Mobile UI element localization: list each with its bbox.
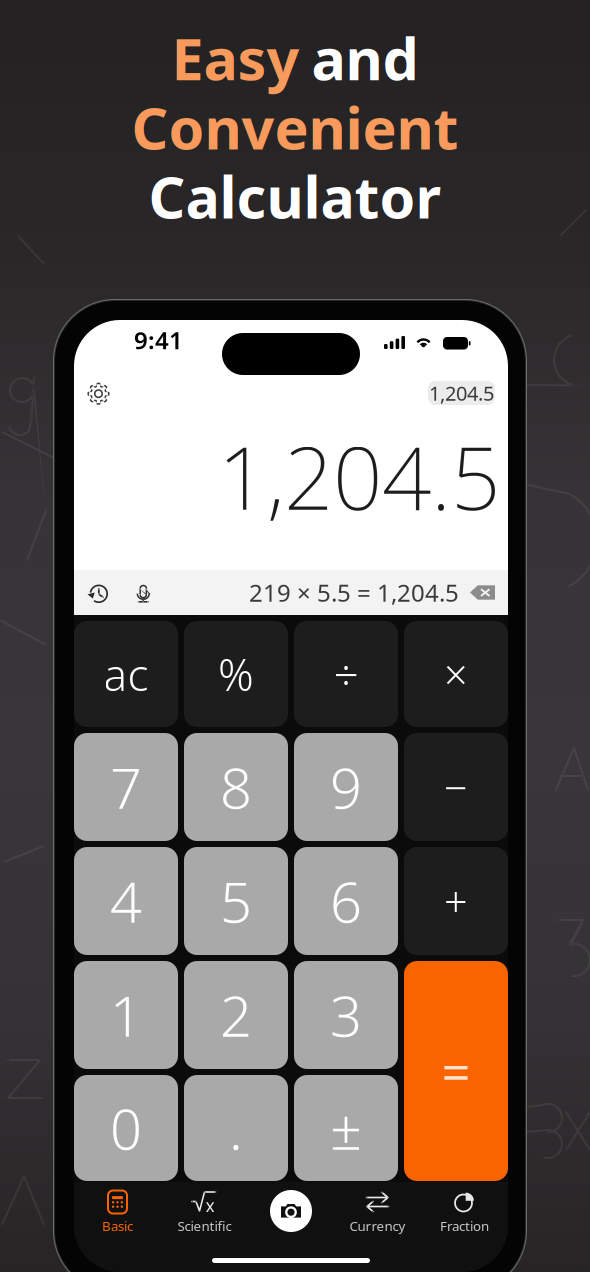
button[interactable]: ± — [294, 1075, 398, 1181]
button[interactable]: History — [80, 570, 114, 615]
staticText: 0 — [110, 1091, 142, 1165]
staticText: 1,204.5 — [429, 380, 494, 406]
button[interactable]: 2 — [184, 961, 288, 1069]
button[interactable]: x — [161, 1189, 248, 1239]
button[interactable]: Fraction — [421, 1189, 508, 1239]
button[interactable]: Currency — [334, 1189, 421, 1239]
staticText: 7 — [110, 750, 142, 824]
button[interactable]: = — [404, 961, 508, 1181]
staticText: 9 — [330, 750, 362, 824]
staticText: Scientific — [177, 1217, 231, 1235]
button[interactable]: Voice input — [128, 570, 158, 615]
button[interactable]: 4 — [74, 847, 178, 955]
button[interactable]: 6 — [294, 847, 398, 955]
staticText: x — [205, 1194, 214, 1217]
button[interactable]: Camera — [262, 1182, 320, 1240]
staticText: 3 — [330, 978, 362, 1052]
staticText: ac — [103, 645, 148, 703]
staticText: 2 — [220, 978, 252, 1052]
staticText: × — [444, 647, 468, 701]
staticText: Basic — [102, 1217, 133, 1235]
button[interactable]: + — [404, 847, 508, 955]
button[interactable]: Delete — [469, 570, 499, 615]
staticText: . — [229, 1091, 243, 1165]
staticText: ÷ — [333, 645, 358, 703]
staticText: 8 — [220, 750, 252, 824]
staticText: Calculator — [148, 158, 441, 234]
staticText: Currency — [349, 1217, 405, 1235]
button[interactable]: 3 — [294, 961, 398, 1069]
staticText: Easy — [171, 20, 299, 96]
button[interactable]: ÷ — [294, 621, 398, 727]
button[interactable]: 8 — [184, 733, 288, 841]
button[interactable]: − — [404, 733, 508, 841]
button[interactable]: 7 — [74, 733, 178, 841]
button[interactable]: . — [184, 1075, 288, 1181]
button[interactable]: Basic — [74, 1189, 161, 1239]
button[interactable]: 1 — [74, 961, 178, 1069]
staticText: 5 — [220, 864, 252, 938]
staticText: = — [441, 1037, 470, 1105]
button[interactable]: % — [184, 621, 288, 727]
staticText: % — [218, 645, 254, 703]
button[interactable]: 5 — [184, 847, 288, 955]
staticText: 1,204.5 — [218, 418, 500, 534]
staticText: Fraction — [440, 1217, 489, 1235]
staticText: 4 — [110, 864, 142, 938]
button[interactable]: 9 — [294, 733, 398, 841]
button[interactable]: × — [404, 621, 508, 727]
staticText: and — [311, 20, 418, 96]
staticText: 6 — [330, 864, 362, 938]
staticText: + — [444, 874, 468, 928]
button[interactable]: ac — [74, 621, 178, 727]
staticText: ± — [330, 1091, 362, 1165]
button[interactable]: 0 — [74, 1075, 178, 1181]
staticText: 1 — [110, 978, 142, 1052]
staticText: − — [444, 760, 468, 814]
staticText: 219 × 5.5 = 1,204.5 — [249, 577, 459, 608]
staticText: 9:41 — [134, 324, 183, 356]
staticText: Convenient — [131, 89, 458, 165]
button[interactable]: Settings — [76, 372, 120, 416]
